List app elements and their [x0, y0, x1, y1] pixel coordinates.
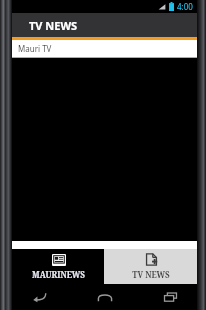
other: Mauri News [52, 254, 66, 266]
staticText: TV NEWS [132, 269, 170, 280]
button[interactable]: Home [92, 287, 118, 307]
staticText: Mauri TV [18, 43, 52, 54]
staticText: MAURINEWS [32, 269, 85, 280]
other: TV News [145, 253, 158, 266]
button[interactable]: Mauri TV [12, 40, 197, 57]
button[interactable]: TV News [104, 249, 197, 284]
button[interactable]: Back [26, 287, 52, 307]
staticText: TV NEWS [29, 18, 78, 33]
staticText: 4:00 [177, 1, 193, 12]
button[interactable]: Recent apps [157, 287, 183, 307]
button[interactable]: Mauri News [12, 249, 104, 284]
